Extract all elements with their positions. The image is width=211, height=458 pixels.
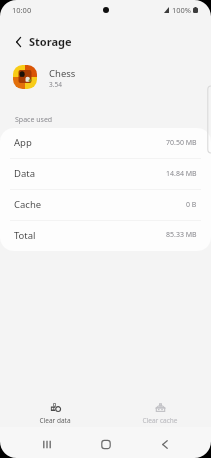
staticText: 85.33 MB bbox=[166, 230, 197, 240]
staticText: Cache bbox=[14, 198, 42, 211]
staticText: Total bbox=[14, 229, 36, 242]
staticText: 100% bbox=[172, 5, 192, 15]
staticText: 0 B bbox=[186, 200, 197, 210]
button[interactable]: Cache bbox=[0, 190, 211, 221]
button[interactable]: Recent apps bbox=[28, 427, 66, 458]
staticText: Clear cache bbox=[142, 416, 178, 425]
staticText: 10:00 bbox=[12, 5, 32, 15]
button[interactable]: Navigate up bbox=[8, 31, 29, 52]
staticText: Space used bbox=[15, 115, 53, 125]
staticText: 3.54 bbox=[49, 80, 62, 89]
button[interactable]: App bbox=[0, 128, 211, 159]
button[interactable]: Back bbox=[146, 427, 184, 458]
button[interactable]: Data bbox=[0, 159, 211, 190]
staticText: 70.50 MB bbox=[166, 138, 197, 148]
button[interactable]: Clear cache bbox=[117, 396, 203, 428]
staticText: Storage bbox=[29, 34, 72, 49]
staticText: Data bbox=[14, 167, 36, 180]
staticText: App bbox=[14, 136, 32, 149]
button[interactable]: Total bbox=[0, 221, 211, 251]
staticText: Chess bbox=[49, 67, 76, 80]
button[interactable]: Home bbox=[87, 427, 125, 458]
staticText: 14.84 MB bbox=[166, 169, 197, 179]
button[interactable]: Clear data bbox=[12, 396, 98, 428]
staticText: Clear data bbox=[39, 416, 71, 425]
